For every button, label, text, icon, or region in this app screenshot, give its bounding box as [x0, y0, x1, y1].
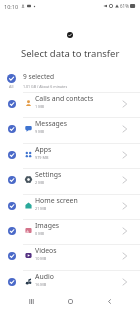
- staticText: Audio: [35, 272, 54, 281]
- staticText: Calls and contacts: [35, 94, 94, 103]
- button[interactable]: Images: [0, 219, 140, 244]
- staticText: Select data to transfer: [21, 47, 120, 60]
- staticText: All: [9, 84, 14, 89]
- staticText: 16 MB: [35, 282, 47, 287]
- button[interactable]: Messages: [0, 117, 140, 142]
- button[interactable]: Back: [102, 294, 116, 308]
- staticText: 1 MB: [35, 104, 45, 109]
- button[interactable]: Videos: [0, 244, 140, 269]
- staticText: Messages: [35, 119, 68, 128]
- button[interactable]: Calls and contacts: [0, 92, 140, 117]
- staticText: Apps: [35, 145, 52, 154]
- staticText: 0 MB: [35, 231, 45, 236]
- staticText: 9 MB: [35, 129, 45, 134]
- button[interactable]: Home screen: [0, 194, 140, 219]
- staticText: 979 MB: [35, 155, 49, 160]
- staticText: Videos: [35, 246, 57, 255]
- button[interactable]: Audio: [0, 270, 140, 295]
- button[interactable]: Home: [63, 294, 77, 308]
- staticText: 10:10: [4, 3, 19, 10]
- staticText: 2 MB: [35, 180, 45, 185]
- button[interactable]: Settings: [0, 168, 140, 193]
- staticText: Settings: [35, 170, 62, 179]
- staticText: 1.01 GB / About 6 minutes: [23, 84, 68, 89]
- button[interactable]: Recents: [24, 294, 38, 308]
- staticText: Home screen: [35, 196, 78, 205]
- staticText: 10 MB: [35, 256, 47, 261]
- staticText: 21 MB: [35, 206, 47, 211]
- staticText: 61%: [120, 3, 129, 9]
- staticText: 9 selected: [23, 72, 55, 81]
- staticText: Images: [35, 221, 60, 230]
- button[interactable]: All: [0, 70, 140, 92]
- button[interactable]: Apps: [0, 143, 140, 168]
